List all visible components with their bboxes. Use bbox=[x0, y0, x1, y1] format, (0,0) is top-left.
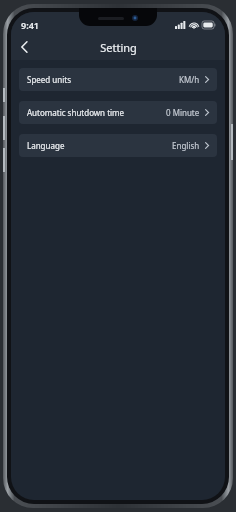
staticText: English bbox=[172, 140, 200, 151]
button[interactable]: Language bbox=[19, 134, 217, 157]
staticText: Language bbox=[27, 140, 65, 151]
staticText: 0 Minute bbox=[166, 107, 200, 118]
button[interactable]: Speed units bbox=[19, 68, 217, 91]
staticText: Setting bbox=[100, 40, 137, 55]
button[interactable]: Automatic shutdown time bbox=[19, 101, 217, 124]
staticText: Speed units bbox=[27, 74, 72, 85]
staticText: 9:41 bbox=[21, 19, 39, 31]
staticText: KM/h bbox=[179, 74, 200, 85]
staticText: Automatic shutdown time bbox=[27, 107, 125, 118]
button[interactable]: Back bbox=[11, 34, 37, 60]
